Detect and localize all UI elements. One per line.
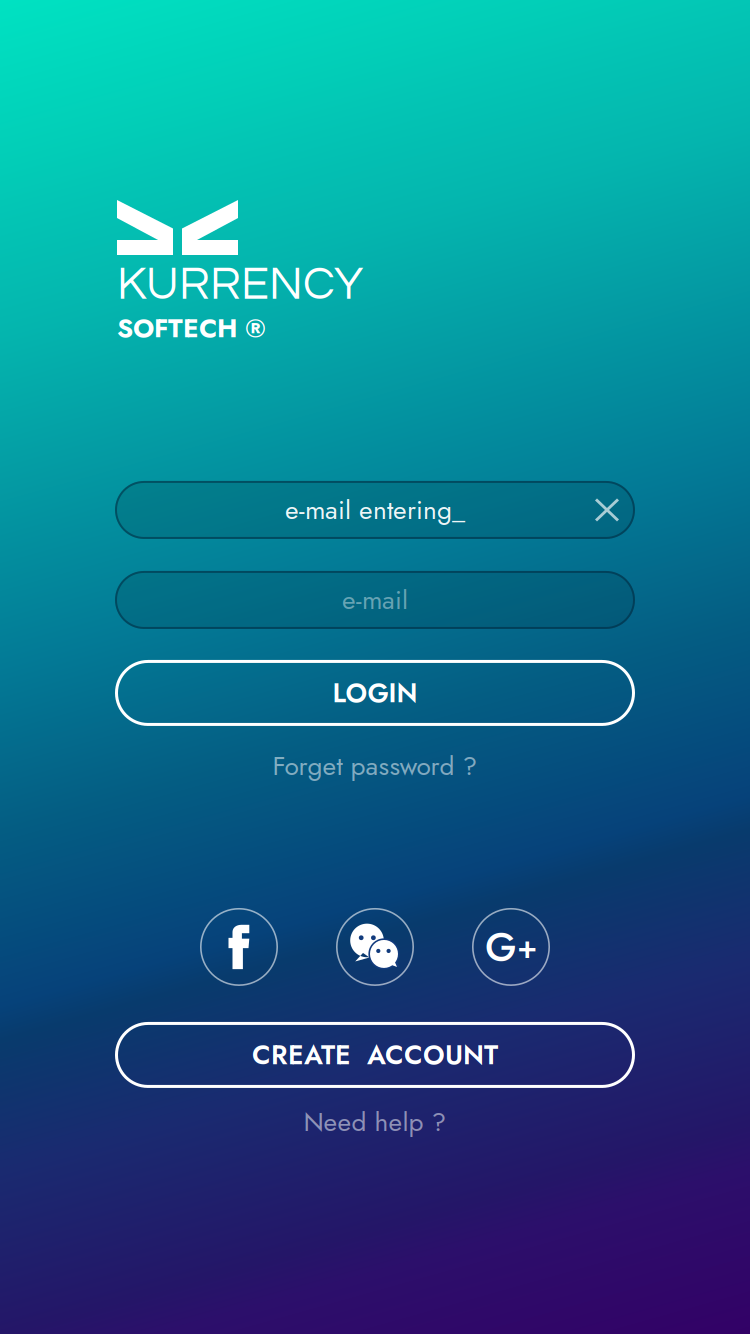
staticText: Need help ? [303, 1103, 446, 1141]
staticText: CREATE ACCOUNT [252, 1036, 498, 1074]
button[interactable]: Need help ? [303, 1102, 446, 1142]
staticText: KURRENCY [117, 261, 363, 308]
button[interactable]: LOGIN [115, 660, 635, 726]
staticText: SOFTECH ® [117, 309, 266, 347]
staticText: G [485, 918, 517, 976]
staticText: e-mail [342, 581, 408, 619]
button[interactable]: Sign in with WeChat [336, 908, 414, 986]
button[interactable]: e-mail entering_ [115, 481, 635, 539]
button[interactable]: Forget password ? [272, 746, 477, 786]
staticText: LOGIN [332, 674, 417, 712]
button[interactable]: Sign in with Facebook [200, 908, 278, 986]
staticText: Forget password ? [272, 747, 477, 785]
button[interactable]: Sign in with Google Plus [472, 908, 550, 986]
button[interactable]: CREATE ACCOUNT [115, 1022, 635, 1088]
button[interactable]: e-mail [115, 571, 635, 629]
staticText: + [517, 924, 537, 970]
staticText: e-mail entering_ [285, 491, 465, 529]
